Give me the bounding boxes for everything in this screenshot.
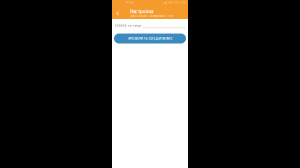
- staticText: ПРОВЕРИТЬ СОЕДИНЕНИЕ: [127, 36, 172, 40]
- button[interactable]: Back: [112, 9, 130, 18]
- staticText: Сервер Exchange: [115, 24, 142, 27]
- staticText: 14:08: [126, 1, 134, 4]
- staticText: Информация о приложении и о СПО: [130, 15, 174, 18]
- staticText: Настройка: [130, 9, 153, 14]
- button[interactable]: ПРОВЕРИТЬ СОЕДИНЕНИЕ: [114, 33, 186, 43]
- staticText: МТС RUS: [168, 1, 180, 4]
